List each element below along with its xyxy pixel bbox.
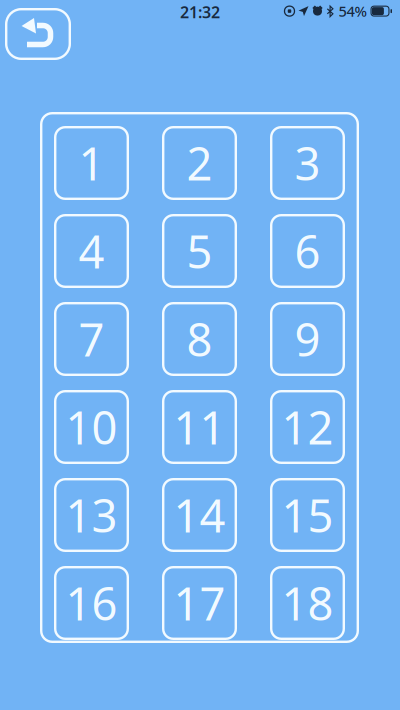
button[interactable]: 17: [162, 566, 237, 640]
button[interactable]: 14: [162, 478, 237, 552]
button[interactable]: 15: [270, 478, 345, 552]
staticText: 15: [281, 485, 333, 545]
staticText: 54%: [338, 1, 366, 21]
staticText: 9: [294, 309, 320, 369]
button[interactable]: 6: [270, 214, 345, 288]
button[interactable]: 9: [270, 302, 345, 376]
staticText: 12: [281, 397, 333, 457]
button[interactable]: 5: [162, 214, 237, 288]
button[interactable]: 16: [54, 566, 129, 640]
staticText: 14: [173, 485, 225, 545]
staticText: 1: [78, 133, 104, 193]
button[interactable]: 7: [54, 302, 129, 376]
button[interactable]: 4: [54, 214, 129, 288]
button[interactable]: 2: [162, 126, 237, 200]
staticText: 4: [78, 221, 104, 281]
button[interactable]: 11: [162, 390, 237, 464]
staticText: 10: [65, 397, 117, 457]
staticText: 5: [186, 221, 212, 281]
button[interactable]: 10: [54, 390, 129, 464]
staticText: 13: [65, 485, 117, 545]
staticText: 2: [186, 133, 212, 193]
staticText: 8: [186, 309, 212, 369]
button[interactable]: 8: [162, 302, 237, 376]
staticText: 7: [78, 309, 104, 369]
staticText: 11: [173, 397, 225, 457]
staticText: 17: [173, 573, 225, 633]
button[interactable]: 3: [270, 126, 345, 200]
button[interactable]: 13: [54, 478, 129, 552]
button[interactable]: 1: [54, 126, 129, 200]
staticText: 3: [294, 133, 320, 193]
button[interactable]: 18: [270, 566, 345, 640]
staticText: 16: [65, 573, 117, 633]
button[interactable]: 12: [270, 390, 345, 464]
staticText: 6: [294, 221, 320, 281]
staticText: 18: [281, 573, 333, 633]
button[interactable]: Back: [5, 8, 71, 60]
staticText: 21:32: [180, 1, 220, 23]
